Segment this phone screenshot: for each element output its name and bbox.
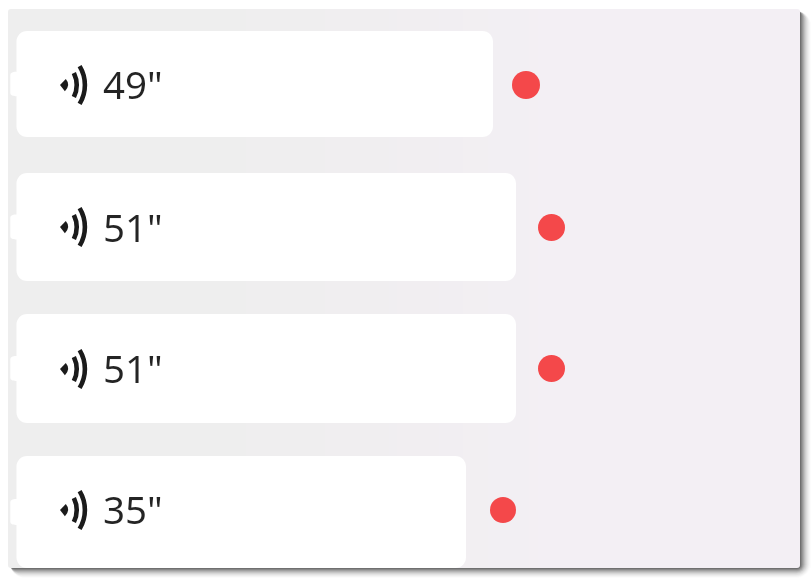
staticText: 51" [103, 342, 163, 394]
button[interactable]: Unread voice message [538, 214, 565, 241]
button[interactable]: Unread voice message [512, 71, 540, 99]
button[interactable]: 51" [9, 314, 516, 423]
button[interactable]: Unread voice message [538, 355, 565, 382]
staticText: 51" [103, 201, 163, 253]
button[interactable]: 49" [9, 31, 493, 137]
staticText: 49" [103, 58, 163, 110]
button[interactable]: 51" [9, 173, 516, 281]
staticText: 35" [103, 483, 163, 535]
button[interactable]: 35" [9, 456, 466, 568]
button[interactable]: Unread voice message [490, 497, 516, 523]
